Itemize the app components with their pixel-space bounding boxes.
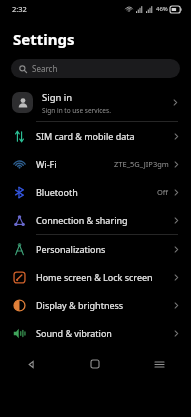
button[interactable]: SIM card & mobile data xyxy=(0,122,191,150)
button[interactable]: Personalizations xyxy=(0,235,191,263)
staticText: Sign in xyxy=(42,91,73,104)
staticText: ZTE_5G_JIP3gm xyxy=(114,159,169,169)
staticText: Sign in to use services. xyxy=(42,106,111,115)
staticText: Home screen & Lock screen xyxy=(36,271,153,283)
staticText: 46% xyxy=(156,5,168,13)
button[interactable]: Back xyxy=(0,353,63,375)
button[interactable]: Sound & vibration xyxy=(0,319,191,347)
button[interactable]: Display & brightness xyxy=(0,291,191,319)
staticText: SIM card & mobile data xyxy=(36,130,135,142)
button[interactable]: Sign in xyxy=(0,84,191,121)
button[interactable]: Recent apps xyxy=(127,353,191,375)
button[interactable]: Wi-Fi xyxy=(0,150,191,178)
button[interactable]: Search xyxy=(11,59,180,78)
staticText: Connection & sharing xyxy=(36,214,128,226)
staticText: Wi-Fi xyxy=(36,158,57,170)
button[interactable]: Connection & sharing xyxy=(0,206,191,234)
staticText: Off xyxy=(157,187,169,197)
staticText: Display & brightness xyxy=(36,299,124,311)
staticText: Settings xyxy=(13,29,75,49)
staticText: 2:32 xyxy=(12,4,27,14)
staticText: Bluetooth xyxy=(36,186,78,198)
button[interactable]: Home screen & Lock screen xyxy=(0,263,191,291)
staticText: Search xyxy=(32,63,58,74)
button[interactable]: Bluetooth xyxy=(0,178,191,206)
staticText: Sound & vibration xyxy=(36,327,112,339)
staticText: Personalizations xyxy=(36,243,106,255)
button[interactable]: Home xyxy=(63,353,127,375)
